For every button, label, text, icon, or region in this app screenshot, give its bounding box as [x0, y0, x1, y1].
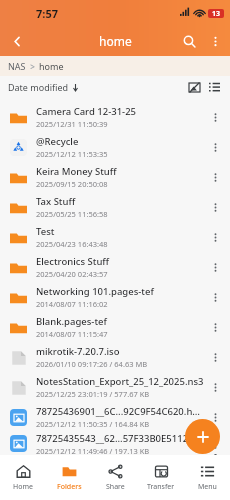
button[interactable]: More options — [204, 136, 226, 158]
button[interactable]: More options — [204, 256, 226, 278]
staticText: mikrotik-7.20.7.iso — [36, 345, 120, 358]
button[interactable]: More options — [204, 433, 226, 455]
staticText: 2025/12/31 11:50:39 — [36, 119, 108, 129]
button[interactable]: Add — [185, 419, 220, 454]
button[interactable]: Home — [0, 455, 46, 500]
staticText: Folders — [57, 482, 82, 492]
staticText: 2026/01/10 09:17:26 / 64.63 MB — [36, 359, 148, 369]
staticText: Transfer — [147, 482, 175, 492]
staticText: Networking 101.pages-tef — [36, 285, 154, 298]
staticText: 2025/04/23 16:43:48 — [36, 239, 108, 249]
staticText: 2025/12/12 11:50:35 / 164.84 KB — [36, 419, 150, 429]
button[interactable]: More options — [204, 106, 226, 128]
button[interactable]: More options — [204, 166, 226, 188]
staticText: Camera Card 12-31-25 — [36, 105, 137, 118]
button[interactable]: Electronics Stuff — [0, 252, 230, 282]
button[interactable]: Search — [176, 28, 202, 54]
staticText: 2025/05/25 11:56:58 — [36, 209, 108, 219]
button[interactable]: Camera Card 12-31-25 — [0, 102, 230, 132]
button[interactable]: Networking 101.pages-tef — [0, 282, 230, 312]
button[interactable]: More options — [204, 346, 226, 368]
button[interactable]: Keira Money Stuff — [0, 162, 230, 192]
button[interactable]: More options — [204, 286, 226, 308]
staticText: home — [39, 60, 64, 72]
button[interactable]: List view — [204, 77, 224, 97]
staticText: NAS — [8, 60, 26, 72]
staticText: 2014/08/07 11:16:02 — [36, 299, 108, 309]
staticText: Electronics Stuff — [36, 255, 110, 268]
staticText: 2025/04/20 02:43:57 — [36, 269, 108, 279]
staticText: 2014/08/07 11:15:47 — [36, 329, 108, 339]
button[interactable]: Menu — [184, 455, 230, 500]
staticText: @Recycle — [36, 135, 79, 148]
staticText: > — [26, 61, 39, 72]
button[interactable]: More options — [204, 406, 226, 428]
staticText: Date modified — [8, 81, 69, 93]
staticText: 2025/12/12 11:49:46 / 197.13 KB — [36, 446, 150, 455]
staticText: 2025/12/25 23:01:19 / 577.67 KB — [36, 389, 150, 399]
staticText: NotesStation_Export_25_12_2025.ns3 — [36, 375, 204, 388]
button[interactable]: Back — [4, 28, 30, 54]
button[interactable]: Blank.pages-tef — [0, 312, 230, 342]
staticText: Share — [106, 482, 125, 492]
button[interactable]: Transfer — [138, 455, 184, 500]
button[interactable]: More options — [202, 28, 228, 54]
button[interactable]: More options — [204, 376, 226, 398]
staticText: 2025/09/15 20:50:08 — [36, 179, 108, 189]
button[interactable]: Thumbnail view — [184, 77, 204, 97]
button[interactable]: NotesStation_Export_25_12_2025.ns3 — [0, 372, 230, 402]
staticText: Blank.pages-tef — [36, 315, 107, 328]
staticText: 78725435543__62...57F33B0E5112.heic — [36, 432, 204, 445]
button[interactable]: Folders — [46, 455, 92, 500]
button[interactable]: Date modified — [8, 81, 79, 93]
button[interactable]: NAS — [8, 60, 64, 72]
button[interactable]: @Recycle — [0, 132, 230, 162]
button[interactable]: More options — [204, 316, 226, 338]
staticText: Menu — [198, 482, 217, 492]
staticText: 13 — [212, 9, 221, 18]
staticText: 7:57 — [36, 6, 58, 21]
button[interactable]: Test — [0, 222, 230, 252]
staticText: 78725436901__6C...92C9F54C620.heic — [36, 405, 204, 418]
button[interactable]: 78725435543__62...57F33B0E5112.heic — [0, 432, 230, 455]
staticText: home — [99, 33, 132, 49]
staticText: Keira Money Stuff — [36, 165, 117, 178]
button[interactable]: 78725436901__6C...92C9F54C620.heic — [0, 402, 230, 432]
button[interactable]: More options — [204, 196, 226, 218]
staticText: 2025/12/12 11:53:35 — [36, 149, 108, 159]
button[interactable]: Tax Stuff — [0, 192, 230, 222]
staticText: Home — [13, 482, 33, 492]
staticText: Tax Stuff — [36, 195, 76, 208]
button[interactable]: Share — [92, 455, 138, 500]
button[interactable]: More options — [204, 226, 226, 248]
staticText: Test — [36, 225, 55, 238]
button[interactable]: mikrotik-7.20.7.iso — [0, 342, 230, 372]
